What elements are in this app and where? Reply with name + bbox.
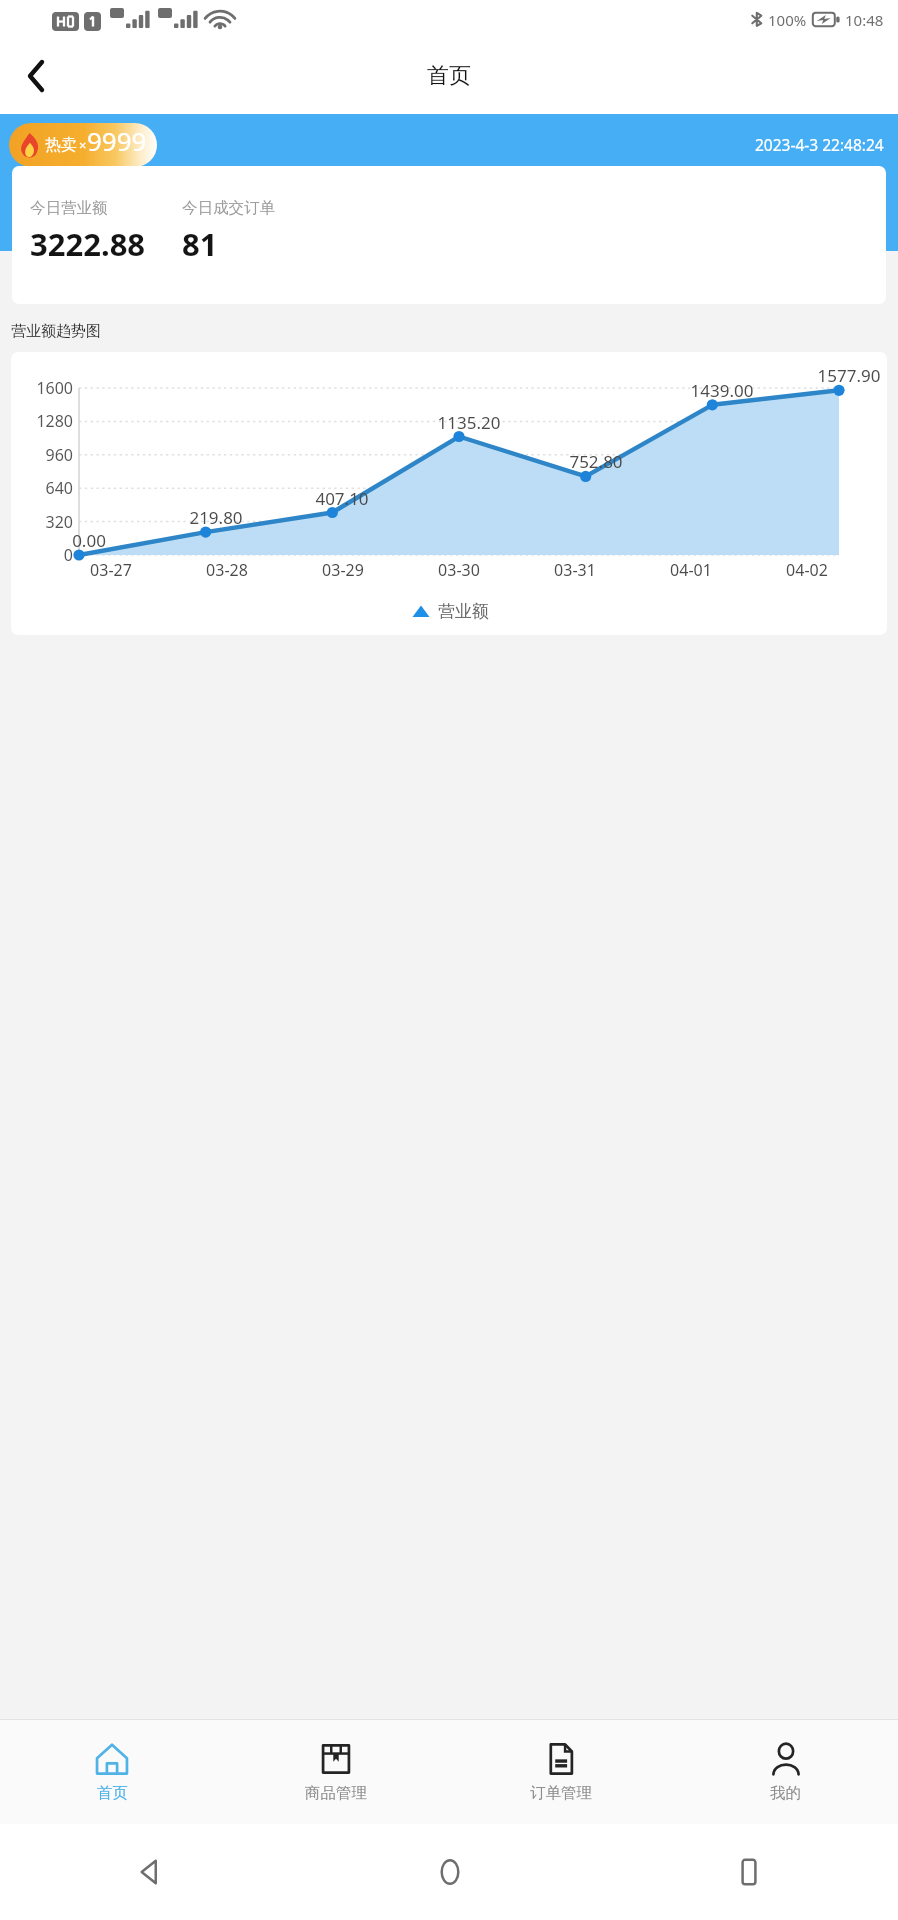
staticText: 首页 xyxy=(427,62,471,90)
staticText: 商品管理 xyxy=(305,1783,367,1803)
staticText: 我的 xyxy=(770,1783,801,1803)
staticText: 0.00 xyxy=(53,529,125,552)
staticText: 03-29 xyxy=(285,559,401,581)
button[interactable]: 订单管理 xyxy=(448,1720,673,1824)
button[interactable]: 商品管理 xyxy=(224,1720,448,1824)
staticText: 1600 xyxy=(11,377,73,399)
staticText: 03-30 xyxy=(401,559,517,581)
staticText: 407.10 xyxy=(306,487,378,510)
staticText: 1577.90 xyxy=(813,364,885,387)
button[interactable]: Home xyxy=(300,1824,599,1920)
staticText: 1439.00 xyxy=(686,379,758,402)
button[interactable]: 我的 xyxy=(673,1720,898,1824)
staticText: 0 xyxy=(11,544,73,566)
button[interactable]: Recent apps xyxy=(599,1824,898,1920)
staticText: 03-31 xyxy=(517,559,633,581)
staticText: 752.80 xyxy=(560,450,632,473)
button[interactable]: 营业额 xyxy=(410,601,489,622)
button[interactable]: Back xyxy=(10,50,62,102)
staticText: 1280 xyxy=(11,410,73,432)
staticText: 640 xyxy=(11,477,73,499)
staticText: 今日成交订单 xyxy=(182,198,275,218)
staticText: 订单管理 xyxy=(530,1783,592,1803)
staticText: 3222.88 xyxy=(30,223,146,265)
staticText: 9999+ xyxy=(87,123,157,167)
staticText: 热卖 xyxy=(45,135,77,155)
staticText: 10:48 xyxy=(845,10,884,30)
staticText: 03-28 xyxy=(169,559,285,581)
button[interactable]: Back xyxy=(0,1824,300,1920)
staticText: 今日营业额 xyxy=(30,198,108,218)
staticText: 100% xyxy=(768,10,807,30)
staticText: 营业额趋势图 xyxy=(11,322,101,341)
staticText: 营业额 xyxy=(438,601,489,622)
staticText: 219.80 xyxy=(180,506,252,529)
staticText: 81 xyxy=(182,223,218,265)
staticText: 04-02 xyxy=(749,559,865,581)
staticText: 03-27 xyxy=(53,559,169,581)
button[interactable]: 热卖 xyxy=(9,123,157,167)
staticText: 960 xyxy=(11,444,73,466)
button[interactable]: 1600 xyxy=(11,352,887,635)
button[interactable]: 首页 xyxy=(0,1720,224,1824)
staticText: 2023-4-3 22:48:24 xyxy=(755,134,884,155)
staticText: 320 xyxy=(11,511,73,533)
button[interactable]: 今日营业额 xyxy=(12,166,886,304)
staticText: 04-01 xyxy=(633,559,749,581)
staticText: 首页 xyxy=(97,1783,128,1803)
staticText: 1135.20 xyxy=(433,411,505,434)
staticText: × xyxy=(79,136,87,154)
